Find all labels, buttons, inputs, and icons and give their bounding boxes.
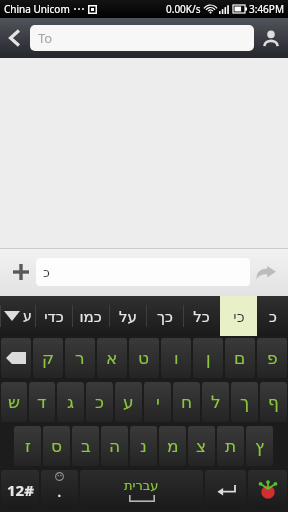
button[interactable]: ף: [260, 382, 287, 422]
staticText: נ: [140, 436, 147, 456]
staticText: ז: [25, 436, 31, 456]
button[interactable]: .: [41, 470, 78, 510]
staticText: י: [156, 392, 160, 412]
button[interactable]: פ: [257, 338, 287, 378]
staticText: China Unicom: [4, 2, 70, 16]
staticText: ח: [181, 392, 193, 412]
staticText: ה: [109, 436, 121, 456]
button[interactable]: 12#: [1, 470, 39, 510]
button[interactable]: כדי: [35, 296, 72, 336]
button[interactable]: ג: [57, 382, 84, 422]
button[interactable]: ק: [33, 338, 63, 378]
staticText: כמו: [79, 308, 102, 325]
staticText: ף: [268, 392, 279, 412]
staticText: כי: [233, 308, 245, 325]
button[interactable]: כמו: [72, 296, 109, 336]
button[interactable]: Enter: [205, 470, 246, 510]
button[interactable]: ך: [231, 382, 258, 422]
staticText: 12#: [7, 480, 34, 500]
button[interactable]: ש: [1, 382, 27, 422]
staticText: כ: [95, 392, 104, 412]
button[interactable]: כל: [183, 296, 220, 336]
button[interactable]: ע: [0, 296, 35, 336]
staticText: כך: [157, 308, 173, 325]
other: Backspace: [6, 352, 26, 364]
staticText: עברית: [124, 478, 159, 493]
staticText: ם: [234, 348, 246, 368]
staticText: מ: [167, 436, 179, 456]
button[interactable]: ס: [43, 426, 70, 466]
button[interactable]: ת: [217, 426, 244, 466]
button[interactable]: Backspace: [1, 338, 31, 378]
staticText: ת: [225, 436, 237, 456]
button[interactable]: ט: [129, 338, 159, 378]
staticText: כ: [269, 308, 277, 325]
button[interactable]: To: [30, 25, 254, 51]
button[interactable]: כ: [86, 382, 113, 422]
button[interactable]: כ: [257, 296, 288, 336]
staticText: על: [119, 308, 137, 325]
staticText: To: [38, 29, 53, 47]
button[interactable]: ח: [173, 382, 200, 422]
staticText: ר: [75, 348, 85, 368]
button[interactable]: ר: [65, 338, 95, 378]
button[interactable]: כך: [146, 296, 183, 336]
staticText: ן: [206, 348, 211, 368]
staticText: צ: [196, 436, 207, 456]
button[interactable]: י: [144, 382, 171, 422]
button[interactable]: נ: [130, 426, 157, 466]
button[interactable]: Input method: [248, 470, 287, 510]
button[interactable]: מ: [159, 426, 186, 466]
staticText: ג: [67, 392, 75, 412]
staticText: .: [57, 479, 62, 502]
staticText: כל: [193, 308, 210, 325]
staticText: ב: [81, 436, 91, 456]
staticText: ט: [138, 348, 150, 368]
staticText: פ: [267, 348, 278, 368]
button[interactable]: Send: [250, 256, 282, 288]
staticText: ק: [42, 348, 55, 368]
staticText: 3:46PM: [249, 2, 284, 16]
button[interactable]: ע: [115, 382, 142, 422]
button[interactable]: Attach: [6, 257, 36, 287]
button[interactable]: ז: [14, 426, 41, 466]
button[interactable]: Space: [80, 470, 203, 510]
button[interactable]: ו: [161, 338, 191, 378]
staticText: ס: [51, 436, 63, 456]
button[interactable]: Contacts: [254, 18, 288, 58]
staticText: א: [106, 348, 118, 368]
staticText: ע: [23, 308, 32, 324]
staticText: ד: [37, 392, 47, 412]
button[interactable]: על: [109, 296, 146, 336]
staticText: ץ: [255, 436, 265, 456]
button[interactable]: צ: [188, 426, 215, 466]
staticText: 0.00K/s: [166, 2, 201, 16]
button[interactable]: ד: [29, 382, 55, 422]
button[interactable]: ץ: [246, 426, 273, 466]
staticText: כ: [43, 265, 50, 280]
staticText: ך: [240, 392, 250, 412]
button[interactable]: ל: [202, 382, 229, 422]
button[interactable]: ב: [72, 426, 99, 466]
button[interactable]: ן: [193, 338, 223, 378]
staticText: ש: [8, 392, 21, 412]
button[interactable]: א: [97, 338, 127, 378]
staticText: כדי: [44, 308, 64, 325]
staticText: ל: [211, 392, 221, 412]
staticText: ע: [123, 392, 134, 412]
staticText: ו: [174, 348, 179, 368]
button[interactable]: Back: [0, 18, 30, 58]
button[interactable]: ם: [225, 338, 255, 378]
button[interactable]: ה: [101, 426, 128, 466]
button[interactable]: כ: [36, 258, 250, 286]
button[interactable]: כי: [220, 296, 257, 336]
